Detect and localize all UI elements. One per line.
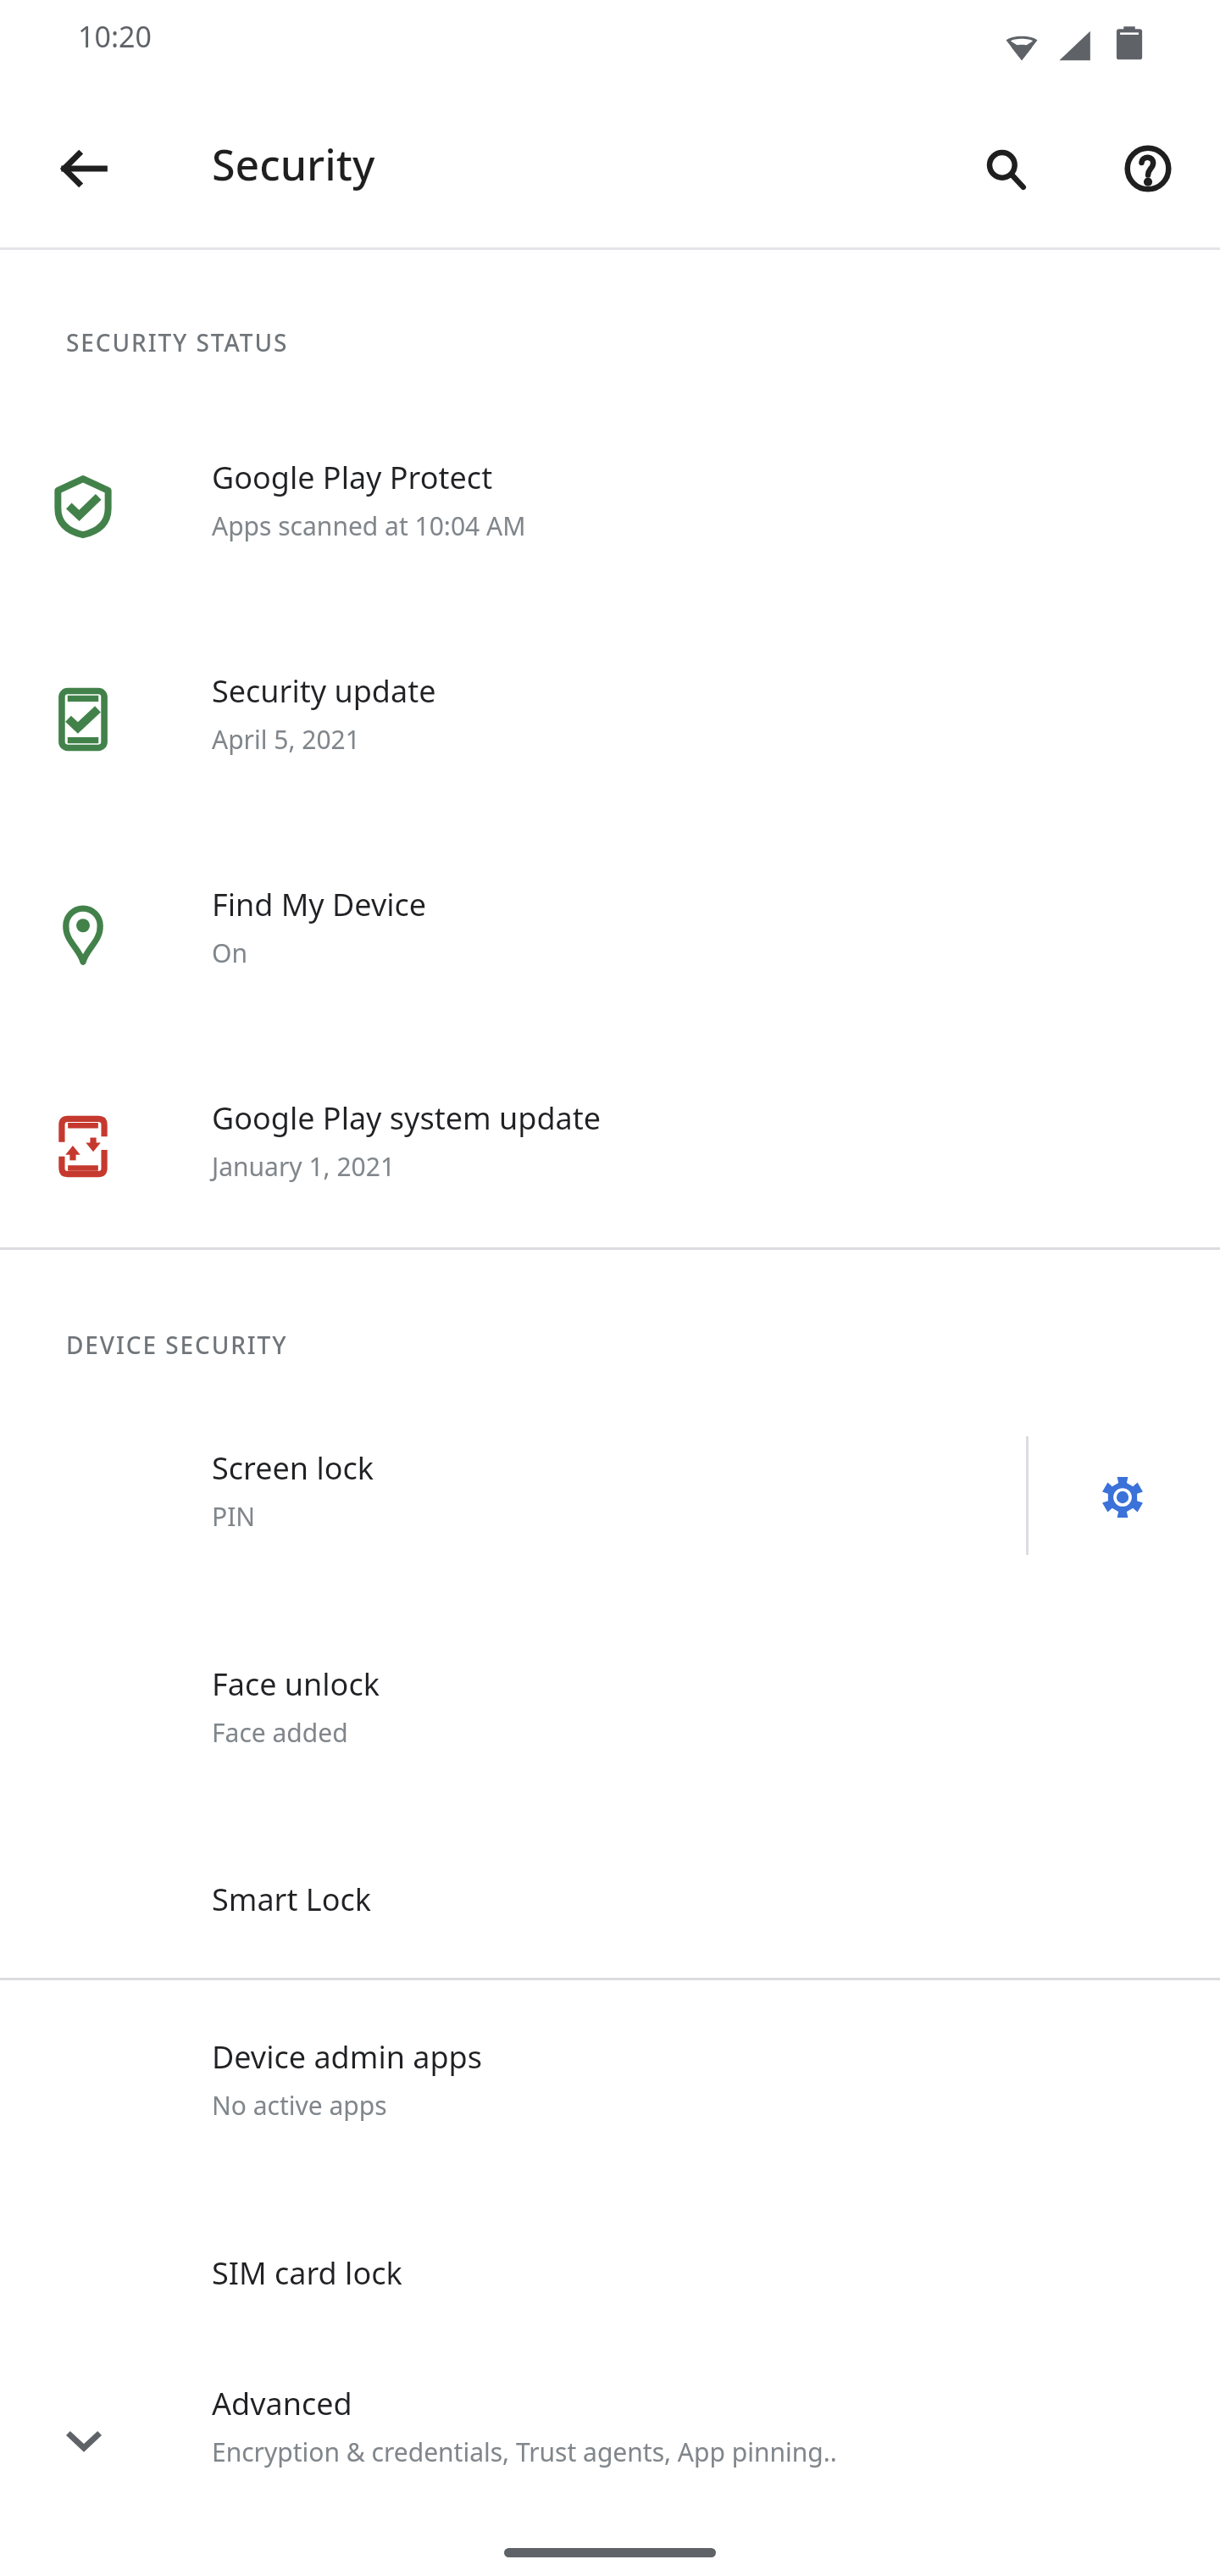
- staticText: Face unlock: [212, 1663, 380, 1705]
- button[interactable]: Device admin apps: [0, 2012, 1220, 2226]
- button[interactable]: Smart Lock: [0, 1853, 1220, 1980]
- button[interactable]: Screen lock settings: [1066, 1441, 1179, 1554]
- staticText: SIM card lock: [212, 2252, 402, 2294]
- button[interactable]: Search: [966, 129, 1045, 208]
- button[interactable]: Find My Device: [0, 855, 1220, 1069]
- button[interactable]: Back: [44, 129, 124, 208]
- button[interactable]: Google Play Protect: [0, 428, 1220, 641]
- staticText: 10:20: [78, 17, 152, 56]
- staticText: Smart Lock: [212, 1879, 371, 1920]
- button[interactable]: Security update: [0, 641, 1220, 855]
- staticText: Google Play system update: [212, 1097, 602, 1139]
- staticText: Google Play Protect: [212, 457, 493, 498]
- staticText: PIN: [212, 1499, 256, 1534]
- staticText: January 1, 2021: [212, 1149, 396, 1184]
- staticText: On: [212, 935, 247, 970]
- staticText: Security update: [212, 670, 436, 712]
- staticText: No active apps: [212, 2088, 387, 2123]
- staticText: Advanced: [212, 2383, 352, 2424]
- staticText: Find My Device: [212, 884, 427, 925]
- staticText: April 5, 2021: [212, 722, 360, 757]
- staticText: Encryption & credentials, Trust agents, …: [212, 2434, 837, 2469]
- staticText: DEVICE SECURITY: [66, 1329, 288, 1361]
- staticText: Screen lock: [212, 1447, 374, 1489]
- button[interactable]: Screen lock: [0, 1424, 1220, 1637]
- button[interactable]: SIM card lock: [0, 2227, 1220, 2354]
- staticText: SECURITY STATUS: [66, 326, 289, 358]
- button[interactable]: Advanced: [0, 2364, 1220, 2542]
- button[interactable]: Google Play system update: [0, 1069, 1220, 1282]
- button[interactable]: Face unlock: [0, 1640, 1220, 1853]
- staticText: Apps scanned at 10:04 AM: [212, 508, 526, 543]
- staticText: Security: [212, 136, 375, 193]
- staticText: Device admin apps: [212, 2036, 482, 2078]
- staticText: Face added: [212, 1715, 348, 1750]
- button[interactable]: Help: [1108, 129, 1188, 208]
